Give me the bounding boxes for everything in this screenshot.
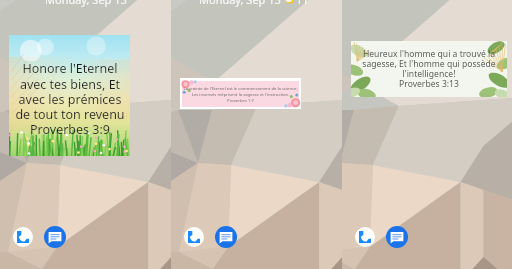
- button[interactable]: Heureux l'homme qui a trouvé la sagesse,…: [351, 41, 507, 97]
- staticText: Monday, Sep 13: [199, 0, 281, 7]
- staticText: 11°: [296, 0, 314, 7]
- button[interactable]: Messages: [215, 226, 237, 248]
- staticText: La crainte de l'Eternel est le commencem…: [183, 86, 298, 104]
- button[interactable]: Phone: [355, 227, 375, 247]
- staticText: Heureux l'homme qui a trouvé la sagesse,…: [362, 48, 496, 90]
- button[interactable]: Messages: [386, 226, 408, 248]
- button[interactable]: Phone: [184, 227, 204, 247]
- staticText: Honore l'Eternel avec tes biens, Et avec…: [15, 60, 125, 137]
- button[interactable]: La crainte de l'Eternel est le commencem…: [180, 78, 301, 109]
- button[interactable]: Messages: [44, 226, 66, 248]
- button[interactable]: Honore l'Eternel avec tes biens, Et avec…: [9, 35, 130, 156]
- staticText: Monday, Sep 13: [45, 0, 127, 7]
- button[interactable]: Phone: [13, 227, 33, 247]
